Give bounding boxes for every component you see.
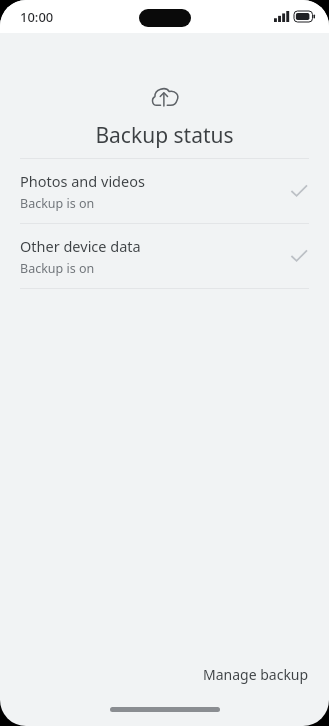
other: Backup enabled bbox=[289, 246, 309, 266]
staticText: Photos and videos bbox=[20, 171, 145, 191]
staticText: 10:00 bbox=[20, 8, 54, 26]
other: Backup enabled bbox=[289, 181, 309, 201]
staticText: Other device data bbox=[20, 236, 141, 256]
button[interactable]: Photos and videos bbox=[0, 159, 329, 223]
staticText: Backup is on bbox=[20, 260, 95, 277]
other: Cloud backup bbox=[151, 86, 179, 107]
button[interactable]: Other device data bbox=[0, 224, 329, 288]
staticText: Backup is on bbox=[20, 195, 95, 212]
button[interactable]: Manage backup bbox=[183, 655, 329, 694]
staticText: Backup status bbox=[0, 121, 329, 150]
staticText: Manage backup bbox=[203, 665, 309, 684]
